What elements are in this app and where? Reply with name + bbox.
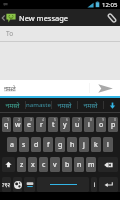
staticText: e [27, 120, 31, 130]
staticText: h [70, 140, 75, 150]
button[interactable]: a [7, 137, 17, 152]
staticText: i [88, 120, 90, 130]
staticText: r [40, 120, 43, 130]
staticText: o [99, 120, 104, 130]
staticText: 12:05 [102, 1, 118, 9]
button[interactable]: d [31, 137, 41, 152]
button[interactable]: । [91, 177, 97, 192]
staticText: नमस्ते [83, 101, 98, 110]
staticText: k [94, 140, 98, 150]
staticText: d [34, 140, 39, 150]
staticText: नमस्ते [4, 85, 16, 92]
button[interactable]: Shift [2, 157, 15, 172]
staticText: n [77, 160, 82, 170]
button[interactable]: u [72, 117, 82, 132]
staticText: x [31, 160, 35, 170]
button[interactable]: नमस्ते [0, 80, 89, 96]
staticText: w [15, 120, 21, 130]
staticText: y [63, 120, 67, 130]
button[interactable]: f [43, 137, 53, 152]
staticText: z [20, 160, 24, 170]
button[interactable]: v [50, 157, 60, 172]
button[interactable]: y [60, 117, 70, 132]
staticText: 4 [42, 117, 45, 122]
staticText: नमस्ते [5, 101, 20, 110]
button[interactable]: l [103, 137, 113, 152]
button[interactable]: More suggestions [104, 98, 120, 112]
button[interactable]: नमस्ते [0, 98, 25, 112]
button[interactable]: Change language [13, 177, 22, 192]
button[interactable]: Enter [99, 177, 118, 192]
staticText: c [42, 160, 46, 170]
button[interactable]: Space [37, 177, 89, 192]
button[interactable]: t [48, 117, 58, 132]
staticText: ?१२ [2, 181, 11, 188]
staticText: 5 [54, 117, 57, 122]
button[interactable]: Settings [24, 177, 35, 192]
staticText: p [111, 120, 116, 130]
button[interactable]: Send [90, 80, 120, 96]
button[interactable]: g [55, 137, 65, 152]
staticText: s [22, 140, 26, 150]
button[interactable]: नमस्ते [52, 98, 77, 112]
button[interactable]: p [108, 117, 118, 132]
staticText: u [75, 120, 80, 130]
staticText: नमस्ते [57, 101, 72, 110]
staticText: 7 [78, 117, 81, 122]
staticText: f [47, 140, 50, 150]
staticText: t [52, 120, 55, 130]
staticText: 8 [90, 117, 93, 122]
staticText: v [53, 160, 57, 170]
button[interactable]: e [24, 117, 34, 132]
staticText: 1 [7, 117, 10, 122]
staticText: 0 [114, 117, 117, 122]
button[interactable]: z [17, 157, 26, 172]
staticText: 9 [102, 117, 105, 122]
staticText: 3 [30, 117, 33, 122]
button[interactable]: Delete [98, 157, 118, 172]
staticText: To [6, 29, 14, 38]
staticText: m [88, 160, 95, 170]
button[interactable]: x [28, 157, 37, 172]
button[interactable]: नमस्ते [78, 98, 103, 112]
staticText: q [4, 120, 9, 130]
button[interactable]: s [19, 137, 29, 152]
staticText: । [93, 180, 96, 190]
button[interactable]: o [96, 117, 106, 132]
button[interactable]: j [79, 137, 89, 152]
button[interactable]: m [86, 157, 96, 172]
staticText: a [10, 140, 14, 150]
button[interactable]: k [91, 137, 101, 152]
staticText: g [58, 140, 63, 150]
staticText: j [83, 140, 85, 150]
button[interactable]: Attach [103, 9, 120, 26]
button[interactable]: q [2, 117, 11, 132]
button[interactable]: w [13, 117, 22, 132]
staticText: 2 [18, 117, 21, 122]
button[interactable]: b [62, 157, 72, 172]
staticText: b [65, 160, 70, 170]
button[interactable]: h [67, 137, 77, 152]
staticText: New message [19, 13, 69, 23]
button[interactable]: c [39, 157, 48, 172]
button[interactable]: Navigate up [0, 9, 16, 26]
staticText: namaste [26, 101, 51, 109]
button[interactable]: ?१२ [2, 177, 11, 192]
button[interactable]: r [36, 117, 46, 132]
button[interactable]: i [84, 117, 94, 132]
button[interactable]: To [0, 26, 120, 41]
staticText: 6 [66, 117, 69, 122]
staticText: l [107, 140, 109, 150]
button[interactable]: n [74, 157, 84, 172]
button[interactable]: namaste [26, 98, 51, 112]
